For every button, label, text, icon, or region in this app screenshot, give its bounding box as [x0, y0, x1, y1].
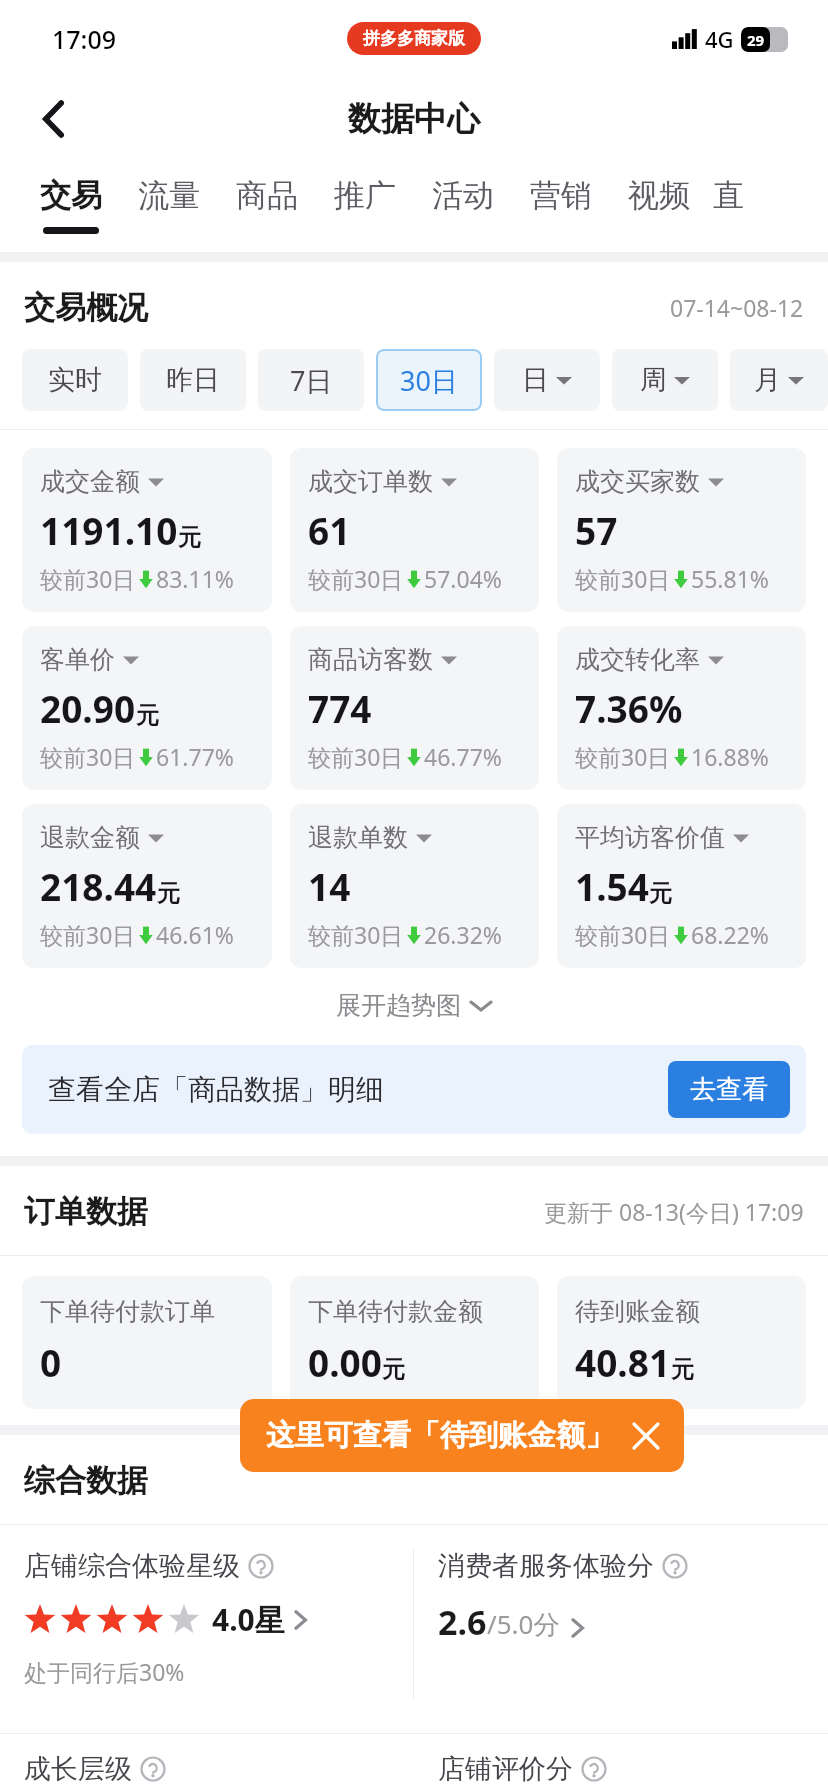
staticText: 消费者服务体验分 [438, 1549, 654, 1583]
button[interactable]: 昨日 [140, 349, 246, 411]
staticText: 商品 [236, 176, 298, 215]
button[interactable]: Back [22, 87, 86, 151]
staticText: 0.00 [308, 1337, 382, 1387]
button[interactable]: 成交金额 [22, 448, 272, 612]
staticText: 7日 [290, 362, 333, 399]
staticText: 数据中心 [348, 98, 480, 140]
staticText: 元 [382, 1355, 405, 1384]
button[interactable]: 商品 [218, 160, 316, 252]
staticText: 14 [308, 861, 351, 911]
staticText: 成交订单数 [308, 466, 433, 497]
button[interactable]: Close [630, 1420, 662, 1452]
button[interactable]: 30日 [376, 349, 482, 411]
staticText: 4G [705, 24, 734, 54]
staticText: 83.11% [156, 563, 234, 594]
button[interactable]: 下单待付款金额 [290, 1276, 539, 1409]
staticText: /5.0分 [487, 1606, 560, 1642]
button[interactable]: 展开趋势图 [0, 990, 828, 1021]
button[interactable]: 周 [612, 349, 718, 411]
button[interactable]: 流量 [120, 160, 218, 252]
staticText: 实时 [48, 363, 102, 397]
staticText: 营销 [530, 176, 592, 215]
staticText: 较前30日 [40, 919, 136, 950]
staticText: 2.6 [438, 1599, 487, 1645]
staticText: 交易 [40, 176, 102, 215]
staticText: 1.54 [575, 861, 649, 911]
staticText: 57.04% [424, 563, 502, 594]
staticText: 较前30日 [40, 741, 136, 772]
staticText: 61.77% [156, 741, 234, 772]
staticText: 店铺评价分 [438, 1752, 573, 1786]
button[interactable]: 推广 [316, 160, 414, 252]
staticText: 40.81 [575, 1337, 671, 1387]
staticText: 退款单数 [308, 822, 408, 853]
staticText: 成长层级 [24, 1752, 132, 1786]
button[interactable]: 退款金额 [22, 804, 272, 968]
button[interactable]: 日 [494, 349, 600, 411]
button[interactable]: 直 [708, 160, 748, 252]
button[interactable]: 下单待付款订单 [22, 1276, 272, 1409]
button[interactable]: 这里可查看「待到账金额」 [240, 1399, 684, 1472]
staticText: 直 [713, 176, 744, 215]
staticText: 更新于 08-13(今日) 17:09 [544, 1196, 804, 1227]
staticText: 17:09 [52, 22, 117, 56]
staticText: 较前30日 [575, 741, 671, 772]
button[interactable]: 视频 [610, 160, 708, 252]
staticText: 16.88% [691, 741, 769, 772]
button[interactable]: 查看全店「商品数据」明细 [22, 1045, 806, 1134]
staticText: 元 [649, 879, 672, 908]
staticText: 待到账金额 [575, 1296, 700, 1327]
staticText: 平均访客价值 [575, 822, 725, 853]
staticText: 交易概况 [24, 288, 148, 327]
button[interactable]: 客单价 [22, 626, 272, 790]
button[interactable]: 月 [730, 349, 828, 411]
staticText: 30日 [400, 362, 458, 399]
button[interactable]: 待到账金额 [557, 1276, 806, 1409]
button[interactable]: 7日 [258, 349, 364, 411]
staticText: 订单数据 [24, 1192, 148, 1231]
button[interactable]: 成交转化率 [557, 626, 806, 790]
staticText: 46.61% [156, 919, 234, 950]
staticText: 元 [157, 879, 180, 908]
staticText: 下单待付款订单 [40, 1296, 215, 1327]
staticText: 元 [671, 1355, 694, 1384]
staticText: 46.77% [424, 741, 502, 772]
button[interactable]: 去查看 [668, 1061, 790, 1118]
staticText: 07-14~08-12 [670, 292, 804, 323]
staticText: 综合数据 [24, 1461, 148, 1500]
staticText: 推广 [334, 176, 396, 215]
staticText: 较前30日 [575, 563, 671, 594]
staticText: 774 [308, 683, 372, 733]
staticText: 查看全店「商品数据」明细 [48, 1072, 384, 1107]
staticText: 店铺综合体验星级 [24, 1549, 240, 1583]
button[interactable]: 活动 [414, 160, 512, 252]
staticText: 4.0星 [212, 1599, 285, 1640]
staticText: 57 [575, 505, 618, 555]
staticText: 商品访客数 [308, 644, 433, 675]
button[interactable]: 退款单数 [290, 804, 539, 968]
button[interactable]: 平均访客价值 [557, 804, 806, 968]
button[interactable]: 实时 [22, 349, 128, 411]
staticText: 较前30日 [575, 919, 671, 950]
staticText: 55.81% [691, 563, 769, 594]
staticText: 昨日 [166, 363, 220, 397]
button[interactable]: 交易 [22, 160, 120, 252]
staticText: 较前30日 [308, 919, 404, 950]
staticText: 下单待付款金额 [308, 1296, 483, 1327]
staticText: 退款金额 [40, 822, 140, 853]
staticText: 元 [178, 523, 201, 552]
staticText: 这里可查看「待到账金额」 [266, 1417, 614, 1454]
staticText: 客单价 [40, 644, 115, 675]
staticText: 月 [754, 363, 781, 397]
button[interactable]: 商品访客数 [290, 626, 539, 790]
staticText: 流量 [138, 176, 200, 215]
button[interactable]: 成交买家数 [557, 448, 806, 612]
staticText: 成交金额 [40, 466, 140, 497]
button[interactable]: 成交订单数 [290, 448, 539, 612]
staticText: 218.44 [40, 861, 157, 911]
button[interactable]: 营销 [512, 160, 610, 252]
staticText: 拼多多商家版 [363, 28, 465, 49]
staticText: 0 [40, 1337, 62, 1387]
staticText: 去查看 [690, 1073, 768, 1106]
staticText: 20.90 [40, 683, 136, 733]
